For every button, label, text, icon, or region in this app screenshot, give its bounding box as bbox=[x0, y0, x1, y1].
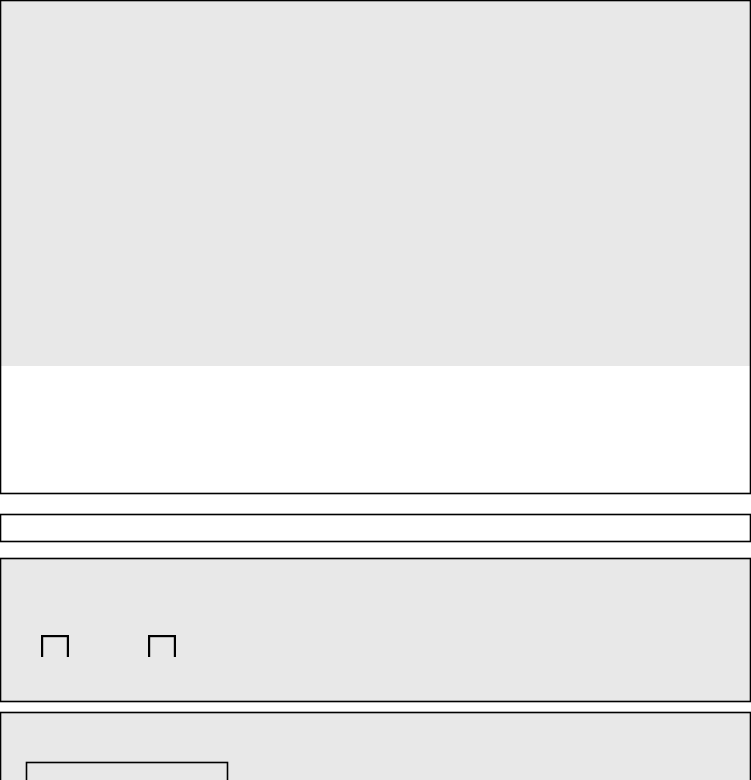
button[interactable]: Placeholder field one bbox=[41, 635, 69, 657]
button[interactable] bbox=[26, 762, 228, 780]
button[interactable] bbox=[0, 0, 751, 494]
button[interactable] bbox=[0, 514, 751, 542]
button[interactable]: Placeholder field two bbox=[148, 635, 176, 657]
